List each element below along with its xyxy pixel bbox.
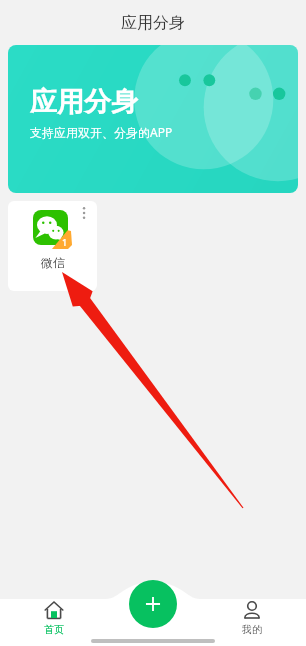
staticText: 我的 [242, 623, 262, 636]
staticText: 首页 [44, 623, 64, 636]
staticText: 微信 [41, 255, 65, 270]
button[interactable]: Add [129, 580, 177, 628]
button[interactable]: More options [73, 201, 97, 225]
staticText: 1 [62, 236, 68, 248]
button[interactable]: 应用分身 [8, 45, 298, 193]
button[interactable]: 首页 [28, 600, 80, 636]
staticText: 应用分身 [121, 13, 185, 33]
staticText: 应用分身 [30, 85, 138, 119]
button[interactable]: 我的 [226, 600, 278, 636]
staticText: 支持应用双开、分身的APP [30, 124, 173, 140]
button[interactable]: More options [8, 201, 97, 291]
